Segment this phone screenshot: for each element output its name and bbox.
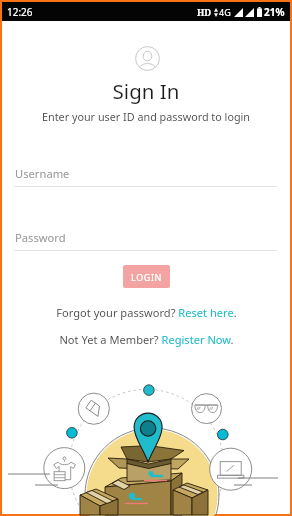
staticText: HD [197,6,212,18]
staticText: 21% [264,5,285,19]
button[interactable]: Username [2,158,290,188]
button[interactable]: Forgot your password? Reset here. [2,305,290,320]
staticText: Forgot your password? Reset here. [56,305,237,320]
staticText: Enter your user ID and password to login [2,109,290,124]
staticText: LOGIN [131,271,163,283]
button[interactable]: LOGIN [123,265,170,288]
staticText: Password [15,230,66,245]
staticText: Username [15,166,70,181]
staticText: Sign In [2,77,290,105]
staticText: Not Yet a Member? Register Now. [59,332,234,347]
button[interactable]: Not Yet a Member? Register Now. [2,332,290,347]
button[interactable]: Password [2,222,290,252]
staticText: 4G [219,6,231,18]
staticText: 12:26 [7,5,33,19]
